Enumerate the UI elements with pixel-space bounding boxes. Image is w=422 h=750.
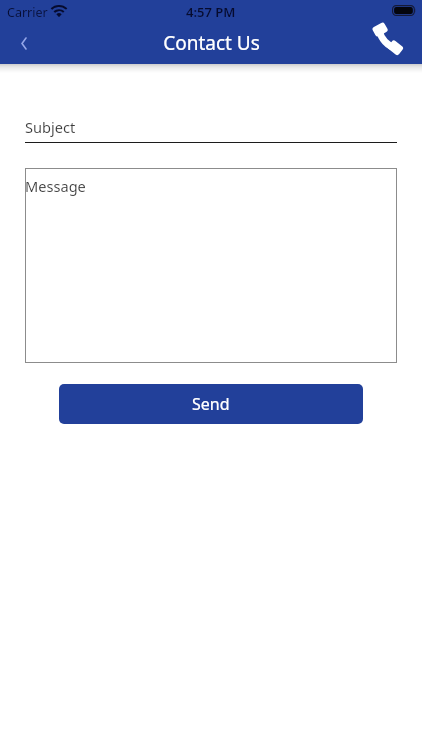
staticText: Carrier [7,4,48,21]
button[interactable]: Subject [25,117,397,144]
button[interactable]: Call [362,22,422,64]
staticText: 4:57 PM [186,3,236,21]
staticText: Message [25,176,86,196]
staticText: Send [192,393,230,415]
button[interactable]: Back [0,22,48,64]
staticText: Subject [25,117,76,137]
button[interactable]: Send [59,384,363,424]
staticText: Contact Us [163,30,260,56]
button[interactable]: Message [25,168,397,363]
